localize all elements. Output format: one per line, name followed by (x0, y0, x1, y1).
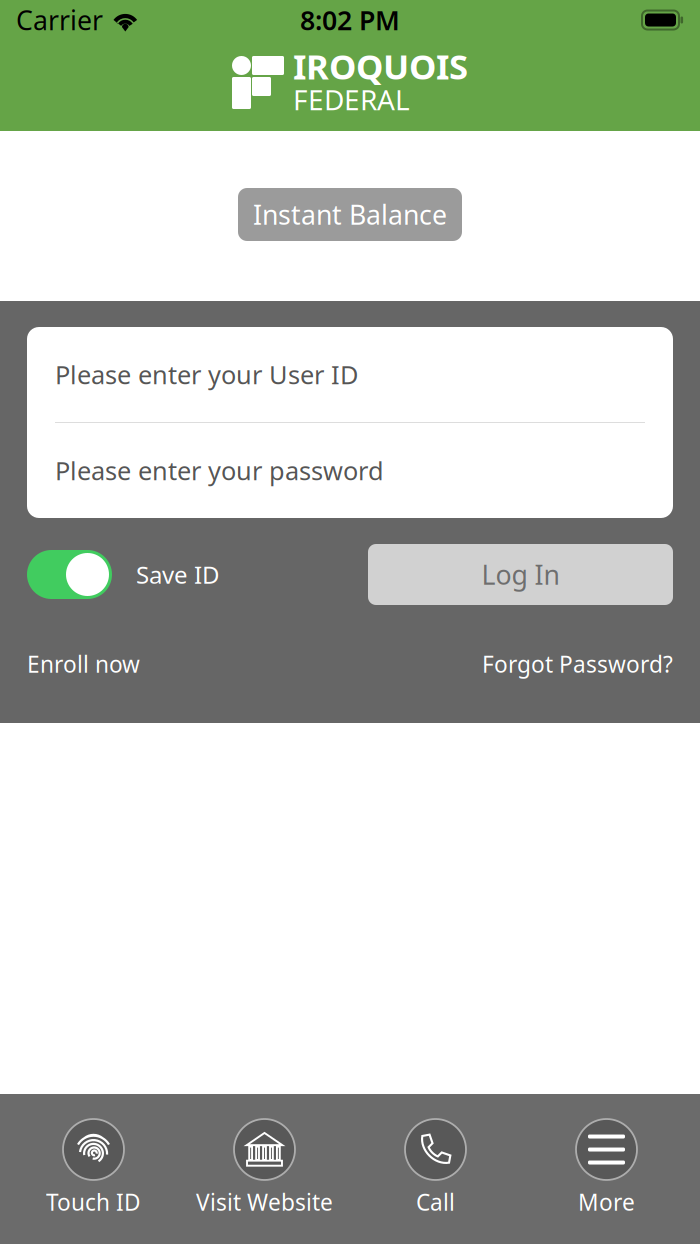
staticText: Touch ID (46, 1187, 141, 1217)
staticText: Enroll now (27, 649, 140, 679)
staticText: Please enter your User ID (55, 358, 358, 391)
button[interactable]: Save ID (27, 550, 220, 599)
staticText: Please enter your password (55, 454, 384, 487)
staticText: Save ID (136, 559, 220, 590)
button[interactable]: Touch ID (8, 1119, 179, 1217)
staticText: More (578, 1187, 635, 1217)
button[interactable]: Visit Website (179, 1119, 350, 1217)
staticText: IROQUOIS (293, 43, 468, 89)
staticText: Visit Website (196, 1187, 333, 1217)
button[interactable]: Enroll now (27, 649, 140, 679)
button[interactable]: Instant Balance (238, 188, 462, 241)
button[interactable]: More (521, 1119, 692, 1217)
staticText: 8:02 PM (300, 2, 400, 38)
button[interactable]: Please enter your password (27, 423, 673, 518)
staticText: Instant Balance (253, 197, 447, 232)
staticText: Call (416, 1187, 455, 1217)
staticText: Carrier (16, 2, 103, 38)
staticText: FEDERAL (293, 81, 410, 118)
staticText: Log In (481, 557, 559, 592)
button[interactable]: Call (350, 1119, 521, 1217)
button[interactable]: Forgot Password? (482, 649, 673, 679)
button[interactable]: Log In (368, 544, 673, 605)
button[interactable]: Please enter your User ID (27, 327, 673, 422)
staticText: Forgot Password? (482, 649, 673, 679)
